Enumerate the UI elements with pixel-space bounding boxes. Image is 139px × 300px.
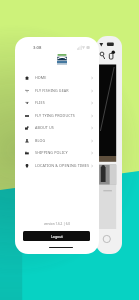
staticText: HOME [35, 75, 47, 80]
staticText: FLIES [35, 100, 45, 105]
button[interactable]: Shop logo [57, 54, 67, 65]
button[interactable]: FLIES [15, 96, 99, 109]
staticText: BLOG [35, 138, 46, 143]
button[interactable]: BLOG [15, 134, 99, 147]
button[interactable]: FLY TYING PRODUCTS [15, 109, 99, 122]
staticText: version 1.6.2 | 6.0 [15, 222, 99, 226]
button[interactable]: LOCATION & OPENING TIMES [15, 159, 99, 172]
staticText: 3:08 [33, 45, 42, 51]
button[interactable]: ABOUT US [15, 121, 99, 134]
button[interactable]: Logout [23, 231, 90, 241]
staticText: SHIPPING POLICY [35, 150, 68, 155]
button[interactable]: FLY FISHING GEAR [15, 84, 99, 97]
staticText: FLY FISHING GEAR [35, 88, 69, 93]
staticText: Logout [51, 234, 63, 239]
button[interactable]: SHIPPING POLICY [15, 146, 99, 159]
staticText: ABOUT US [35, 125, 55, 130]
staticText: FLY TYING PRODUCTS [35, 113, 75, 118]
button[interactable]: HOME [15, 71, 99, 84]
staticText: LOCATION & OPENING TIMES [35, 163, 90, 168]
